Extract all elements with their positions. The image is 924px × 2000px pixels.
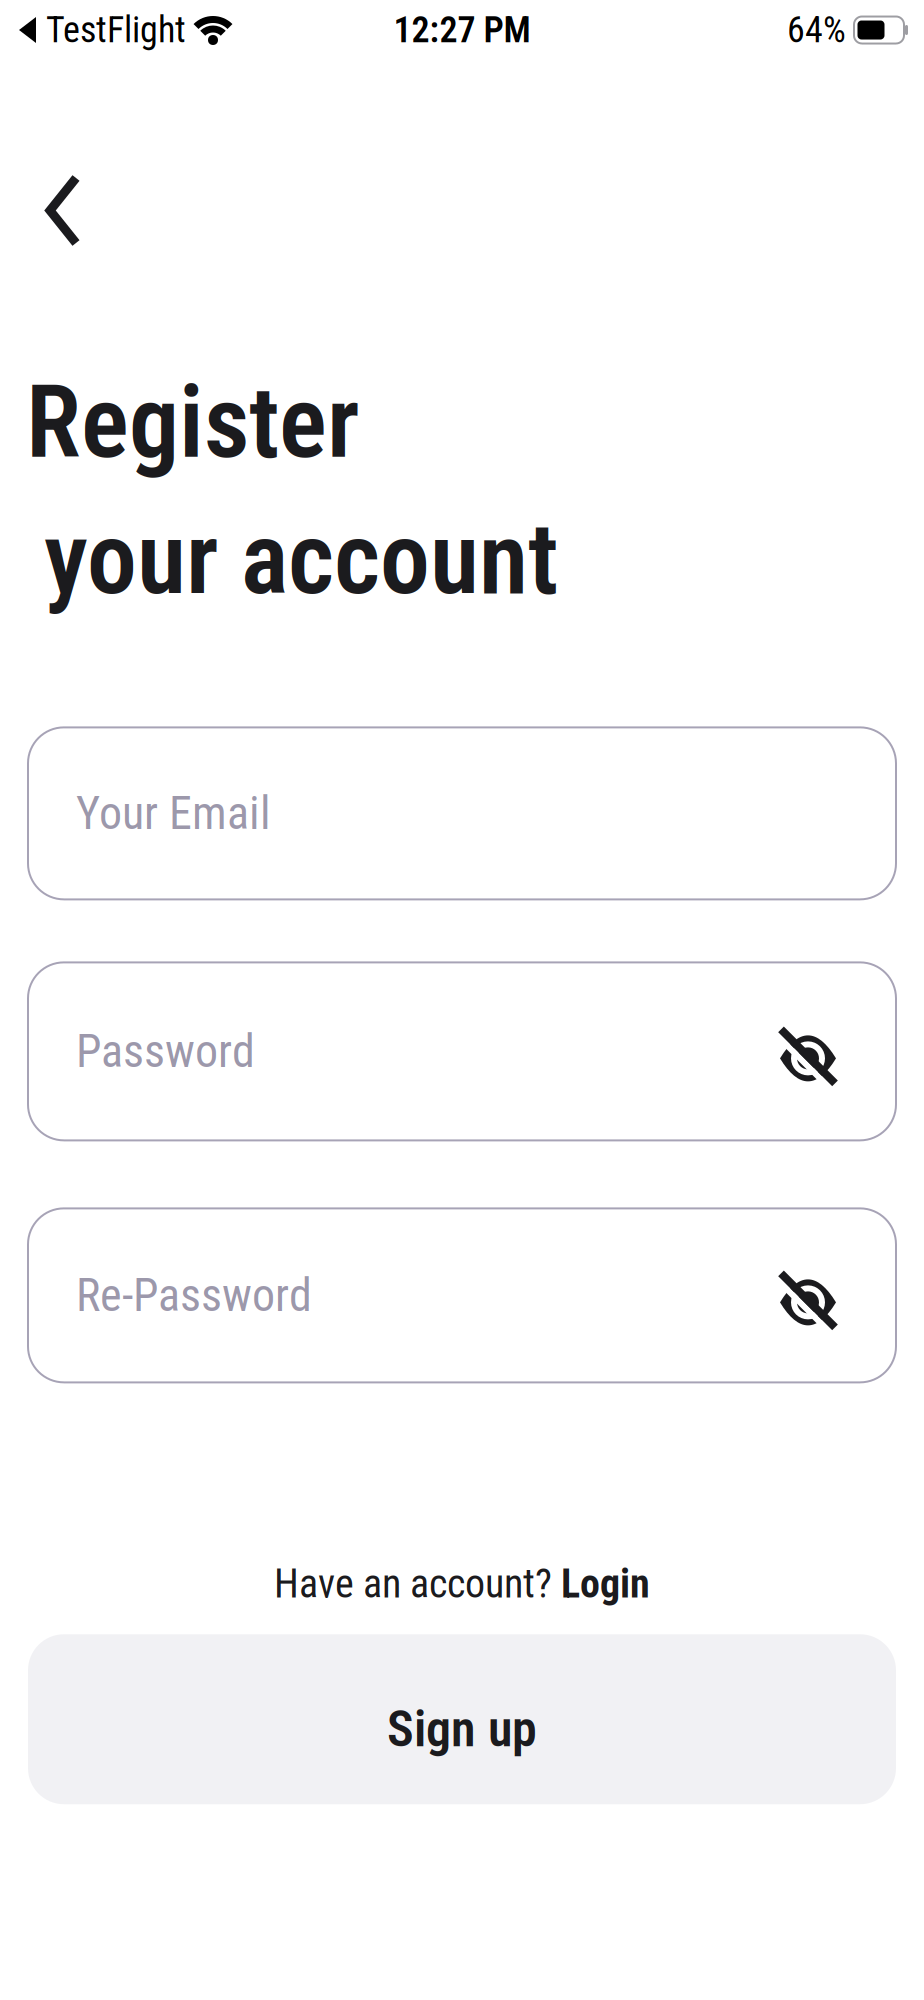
button[interactable]: Show password (780, 1267, 836, 1323)
button[interactable]: Show password (780, 1023, 836, 1079)
staticText: Password (76, 1024, 255, 1078)
button[interactable]: Login (561, 1560, 650, 1607)
staticText: 64% (787, 9, 846, 51)
staticText: Your Email (76, 786, 271, 840)
staticText: Sign up (387, 1700, 537, 1759)
staticText: your account (44, 500, 558, 617)
button[interactable]: Sign up (28, 1634, 896, 1804)
button[interactable]: Back (0, 178, 76, 243)
staticText: 12:27 PM (393, 9, 530, 51)
staticText: TestFlight (46, 9, 186, 51)
staticText: Register (26, 364, 359, 481)
staticText: Login (561, 1560, 650, 1607)
staticText: Have an account? (274, 1560, 561, 1607)
staticText: Re-Password (76, 1268, 312, 1322)
